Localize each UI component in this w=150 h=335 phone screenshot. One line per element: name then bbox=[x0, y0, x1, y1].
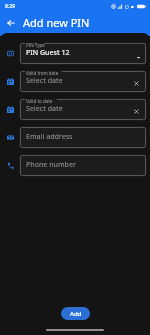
staticText: PIN Guest 12 bbox=[26, 48, 70, 58]
staticText: Valid from date bbox=[26, 70, 59, 76]
button[interactable]: Clear bbox=[132, 79, 141, 88]
staticText: Phone number bbox=[26, 160, 76, 170]
button[interactable]: Clear bbox=[132, 107, 141, 116]
staticText: Select date bbox=[26, 104, 63, 114]
button[interactable]: PIN Type bbox=[20, 42, 146, 64]
staticText: Valid to date bbox=[26, 98, 53, 104]
button[interactable]: Back bbox=[3, 15, 19, 31]
button[interactable]: Valid from date bbox=[20, 70, 146, 92]
button[interactable]: Phone number bbox=[20, 154, 146, 176]
staticText: 8:29 bbox=[5, 3, 15, 10]
staticText: Select date bbox=[26, 76, 63, 86]
button[interactable]: Add bbox=[61, 307, 90, 320]
button[interactable]: Email address bbox=[20, 126, 146, 148]
staticText: Email address bbox=[26, 132, 73, 142]
staticText: Add bbox=[70, 310, 82, 318]
staticText: PIN Type bbox=[26, 42, 45, 48]
staticText: Add new PIN bbox=[23, 15, 90, 30]
button[interactable]: Valid to date bbox=[20, 98, 146, 120]
